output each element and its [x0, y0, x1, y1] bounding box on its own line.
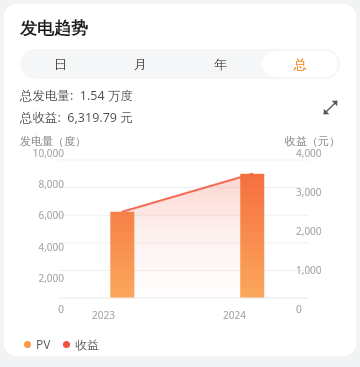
- staticText: 发电趋势: [20, 18, 88, 39]
- button[interactable]: 年: [180, 49, 260, 79]
- staticText: 2,000: [38, 271, 64, 285]
- staticText: PV: [36, 336, 51, 352]
- staticText: 月: [134, 56, 147, 72]
- staticText: 0: [296, 302, 302, 316]
- staticText: 年: [214, 56, 227, 72]
- button[interactable]: Expand chart: [316, 93, 344, 121]
- staticText: 3,000: [296, 185, 322, 199]
- staticText: 总收益: 6,319.79 元: [20, 109, 133, 126]
- staticText: 6,000: [38, 208, 64, 222]
- staticText: 日: [54, 56, 67, 72]
- staticText: 收益（元）: [285, 134, 340, 148]
- staticText: 4,000: [296, 146, 322, 160]
- staticText: 8,000: [38, 177, 64, 191]
- staticText: 收益: [75, 337, 99, 352]
- button[interactable]: 日: [20, 49, 100, 79]
- staticText: 10,000: [32, 146, 64, 160]
- button[interactable]: 收益: [63, 337, 99, 352]
- staticText: 1,000: [296, 263, 322, 277]
- staticText: 4,000: [38, 240, 64, 254]
- staticText: 2,000: [296, 224, 322, 238]
- staticText: 发电量（度）: [20, 134, 86, 148]
- staticText: 2024: [223, 308, 246, 322]
- staticText: 2023: [92, 308, 115, 322]
- staticText: 总: [294, 56, 307, 72]
- staticText: 总发电量: 1.54 万度: [20, 87, 133, 104]
- staticText: 0: [58, 302, 64, 316]
- button[interactable]: 总: [262, 51, 338, 77]
- button[interactable]: PV: [24, 336, 51, 352]
- button[interactable]: 月: [100, 49, 180, 79]
